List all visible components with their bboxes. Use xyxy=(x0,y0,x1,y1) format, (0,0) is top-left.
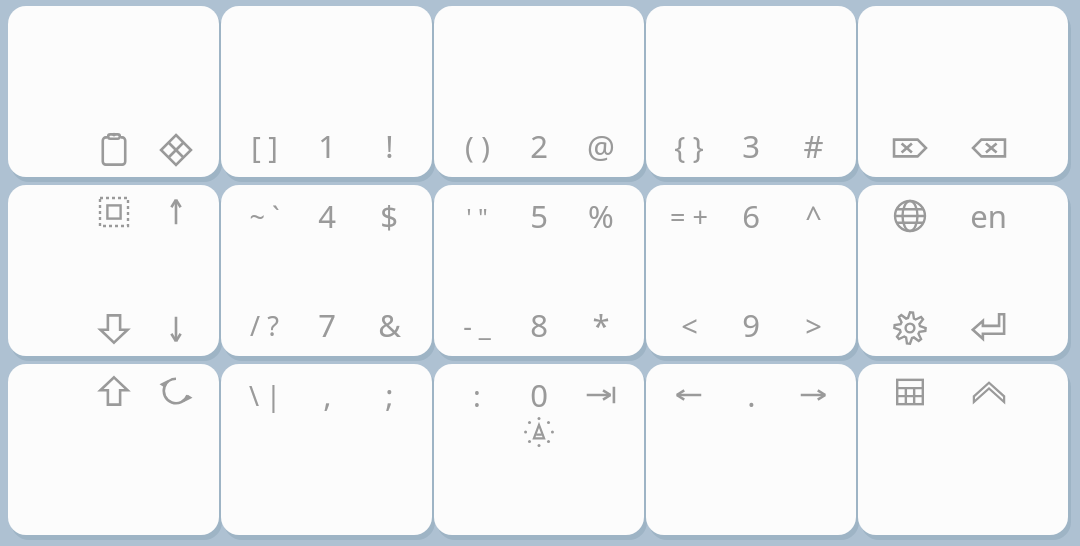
staticText: 2 xyxy=(530,125,548,167)
other: Left xyxy=(672,378,706,412)
button[interactable]: \ | xyxy=(221,364,432,535)
button[interactable]: Language xyxy=(858,185,1068,356)
staticText: 9 xyxy=(742,304,760,346)
other: Tab xyxy=(584,378,618,412)
other: Switch layout xyxy=(159,374,193,408)
button[interactable]: Shift xyxy=(8,364,219,535)
staticText: / ? xyxy=(250,307,279,344)
other: Emoji xyxy=(159,133,193,167)
staticText: & xyxy=(378,304,401,346)
other: Clipboard xyxy=(97,133,131,167)
other: Backspace xyxy=(970,129,1008,167)
button[interactable]: = + xyxy=(646,185,856,356)
button[interactable]: ( ) xyxy=(434,6,644,177)
staticText: , xyxy=(323,374,332,416)
button[interactable]: Select all xyxy=(8,185,219,356)
button[interactable]: Left xyxy=(646,364,856,535)
staticText: ; xyxy=(385,374,394,416)
staticText: ~ ` xyxy=(249,198,280,235)
other: Auto capitalize xyxy=(523,416,555,448)
staticText: ^ xyxy=(805,197,822,236)
other: Shift xyxy=(97,374,131,408)
other: Expand xyxy=(971,374,1007,410)
staticText: 6 xyxy=(742,195,760,237)
button[interactable]: Clipboard xyxy=(8,6,219,177)
staticText: - _ xyxy=(463,307,491,344)
staticText: 7 xyxy=(318,304,336,346)
staticText: \ | xyxy=(249,377,281,414)
staticText: * xyxy=(592,304,610,346)
staticText: 4 xyxy=(318,195,336,237)
other: Page down xyxy=(97,312,131,346)
staticText: . xyxy=(747,374,756,416)
staticText: [ ] xyxy=(251,127,278,166)
button[interactable]: { } xyxy=(646,6,856,177)
button[interactable]: ~ ` xyxy=(221,185,432,356)
staticText: 5 xyxy=(530,195,548,237)
button[interactable]: ' " xyxy=(434,185,644,356)
staticText: $ xyxy=(380,195,398,237)
button[interactable]: : xyxy=(434,364,644,535)
staticText: ( ) xyxy=(465,127,490,166)
other: Settings xyxy=(893,311,927,345)
other: Enter xyxy=(971,310,1007,346)
other: Select all xyxy=(99,197,129,227)
staticText: = + xyxy=(670,198,708,235)
other: Delete forward xyxy=(891,129,929,167)
staticText: { } xyxy=(674,127,704,166)
staticText: > xyxy=(805,306,822,345)
other: Right xyxy=(796,378,830,412)
staticText: 3 xyxy=(742,125,760,167)
staticText: en xyxy=(970,195,1007,237)
staticText: ! xyxy=(385,125,394,167)
staticText: ' " xyxy=(466,200,488,233)
staticText: 8 xyxy=(530,304,548,346)
staticText: 1 xyxy=(318,125,336,167)
staticText: 0 xyxy=(530,374,548,416)
other: Language xyxy=(893,199,927,233)
staticText: # xyxy=(803,125,824,167)
button[interactable]: Calculator xyxy=(858,364,1068,535)
staticText: % xyxy=(588,195,614,237)
other: Down xyxy=(159,312,193,346)
staticText: @ xyxy=(587,125,615,167)
other: Calculator xyxy=(894,376,926,408)
button[interactable]: [ ] xyxy=(221,6,432,177)
staticText: : xyxy=(473,376,481,415)
staticText: < xyxy=(681,306,698,345)
button[interactable]: Delete forward xyxy=(858,6,1068,177)
other: Up xyxy=(159,195,193,229)
